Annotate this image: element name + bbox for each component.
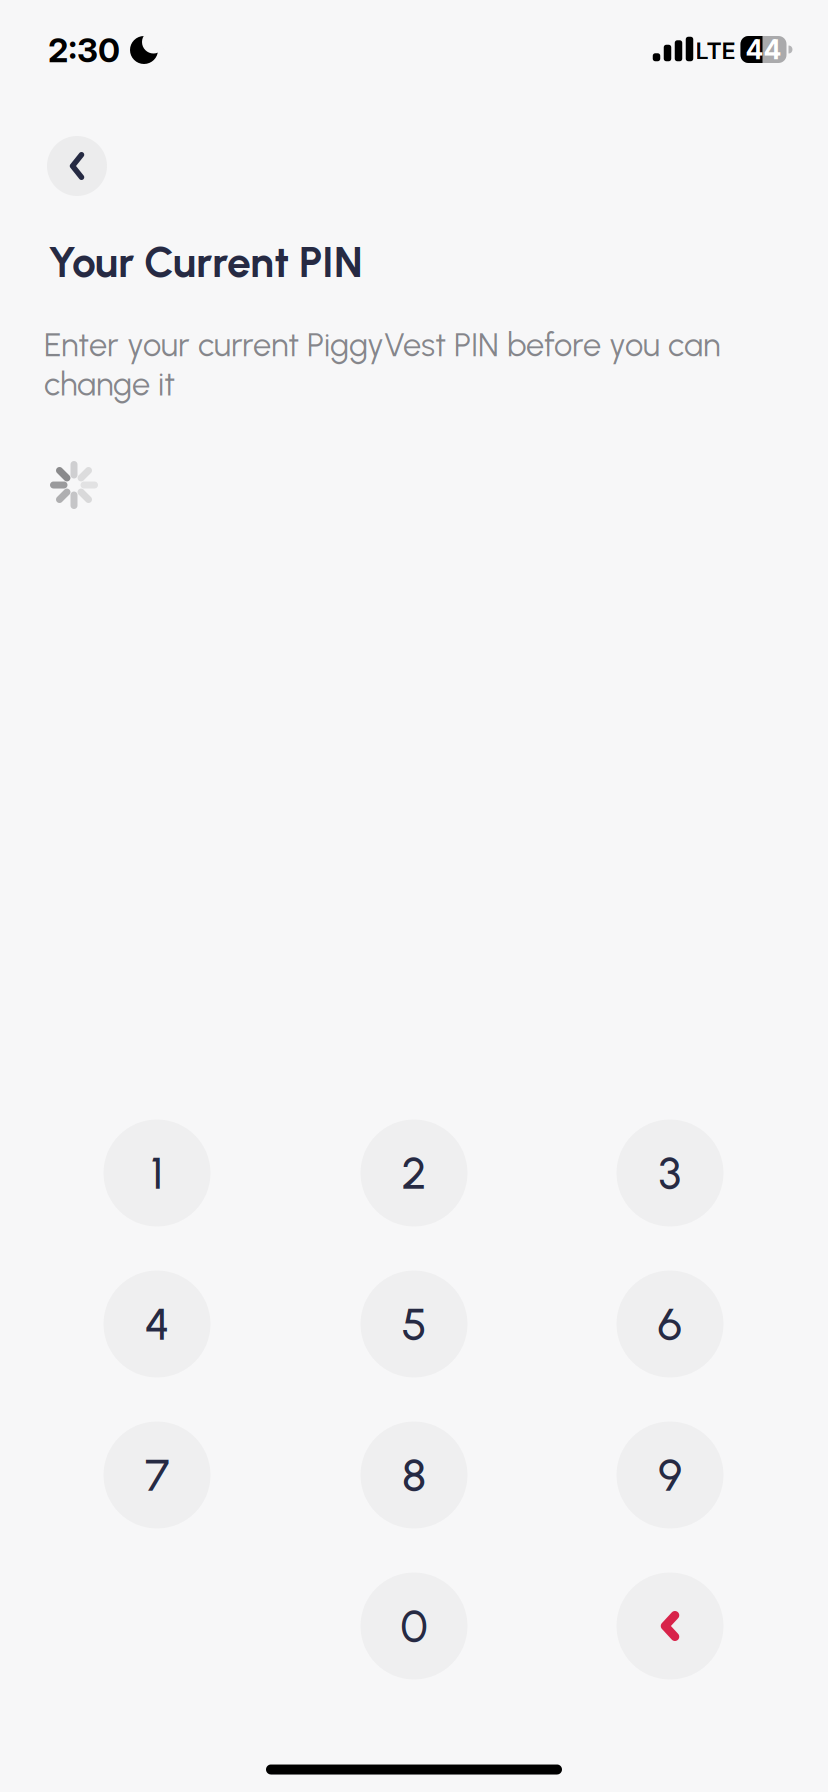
staticText: 5	[401, 1297, 426, 1351]
staticText: 2	[401, 1146, 426, 1200]
button[interactable]: 6	[616, 1270, 723, 1377]
staticText: change it	[44, 364, 175, 403]
button[interactable]: 4	[103, 1270, 210, 1377]
staticText: 8	[402, 1448, 426, 1502]
button[interactable]: 5	[360, 1270, 467, 1377]
button[interactable]: Back	[47, 136, 107, 196]
staticText: 1	[150, 1146, 163, 1200]
staticText: 3	[658, 1146, 681, 1200]
button[interactable]: 3	[616, 1119, 723, 1226]
button[interactable]: 0	[360, 1572, 467, 1679]
button[interactable]: 7	[103, 1421, 210, 1528]
button[interactable]: 9	[616, 1421, 723, 1528]
staticText: Enter your current PiggyVest PIN before …	[44, 325, 720, 364]
staticText: LTE	[695, 37, 735, 65]
staticText: 0	[400, 1599, 427, 1653]
button[interactable]: 1	[103, 1119, 210, 1226]
staticText: 7	[145, 1448, 169, 1502]
staticText: 44	[745, 33, 781, 66]
staticText: 2:30	[48, 30, 120, 70]
staticText: 6	[657, 1297, 682, 1351]
button[interactable]: Delete	[616, 1572, 723, 1679]
button[interactable]: 8	[360, 1421, 467, 1528]
button[interactable]: 2	[360, 1119, 467, 1226]
staticText: 4	[144, 1297, 169, 1351]
staticText: 9	[658, 1448, 682, 1502]
staticText: Your Current PIN	[48, 236, 363, 288]
